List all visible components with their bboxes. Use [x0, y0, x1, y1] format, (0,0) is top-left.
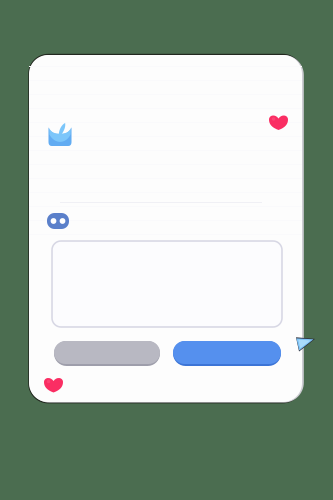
button[interactable]: Send: [173, 341, 281, 366]
button[interactable]: Cancel: [54, 341, 160, 366]
